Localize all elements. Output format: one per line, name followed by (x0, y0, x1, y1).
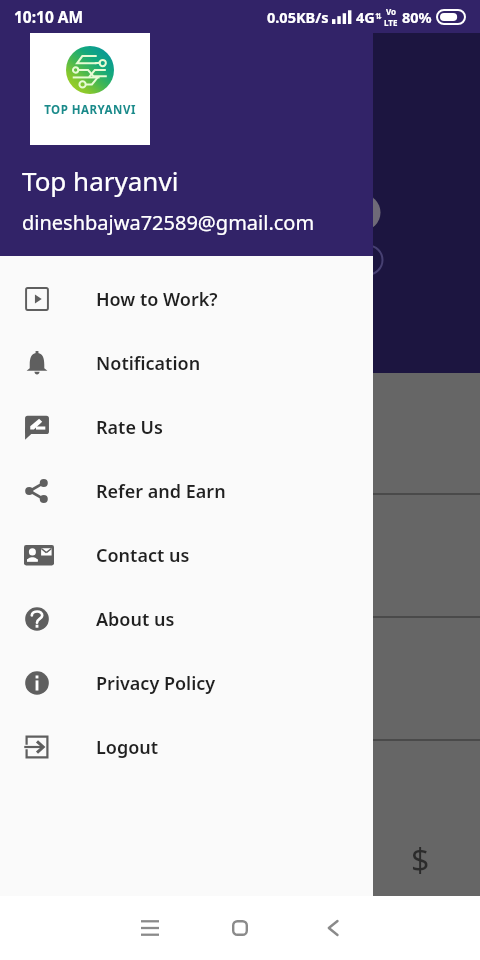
button[interactable]: Privacy Policy (0, 651, 373, 715)
staticText: How to Work? (96, 287, 218, 312)
staticText: 0.05KB/s (267, 7, 329, 27)
staticText: Privacy Policy (96, 671, 216, 696)
staticText: TOP HARYANVI (44, 102, 136, 118)
staticText: ⇅ (375, 12, 382, 21)
staticText: dineshbajwa72589@gmail.com (22, 209, 315, 236)
staticText: Refer and Earn (96, 479, 226, 504)
button[interactable]: Home (210, 898, 270, 958)
staticText: Notification (96, 351, 201, 376)
button[interactable]: Back (303, 898, 363, 958)
staticText: Logout (96, 735, 159, 760)
button[interactable]: Contact us (0, 523, 373, 587)
button[interactable]: Refer and Earn (0, 459, 373, 523)
staticText: 10:10 AM (14, 6, 84, 27)
staticText: LTE (384, 17, 398, 28)
button[interactable]: About us (0, 587, 373, 651)
staticText: Vo (386, 6, 397, 17)
button[interactable]: Recent apps (120, 898, 180, 958)
staticText: Top haryanvi (22, 163, 179, 198)
staticText: Rate Us (96, 415, 163, 440)
button[interactable]: Rate Us (0, 395, 373, 459)
staticText: $ (411, 838, 430, 882)
button[interactable]: How to Work? (0, 267, 373, 331)
staticText: 4G (356, 7, 375, 27)
staticText: About us (96, 607, 175, 632)
button[interactable]: Notification (0, 331, 373, 395)
staticText: Contact us (96, 543, 190, 568)
button[interactable]: Logout (0, 715, 373, 779)
staticText: 80% (402, 7, 432, 27)
